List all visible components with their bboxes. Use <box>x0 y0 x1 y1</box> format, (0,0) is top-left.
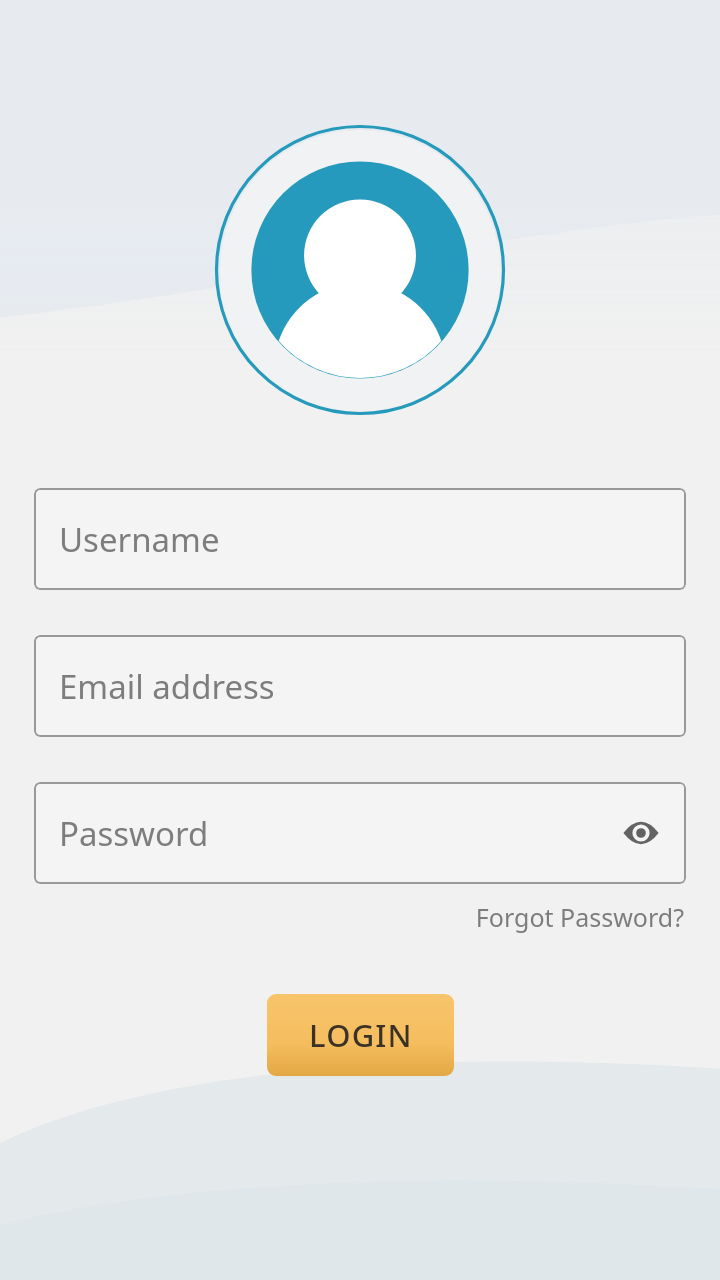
button[interactable]: Email address <box>34 635 686 737</box>
other: Profile avatar <box>214 124 506 416</box>
button[interactable]: Forgot Password? <box>473 896 686 938</box>
staticText: Forgot Password? <box>475 900 684 934</box>
button[interactable]: Password <box>34 782 686 884</box>
staticText: Email address <box>59 664 275 709</box>
staticText: LOGIN <box>309 1014 413 1056</box>
staticText: Password <box>59 811 209 856</box>
staticText: Username <box>59 517 220 562</box>
button[interactable]: Username <box>34 488 686 590</box>
button[interactable]: LOGIN <box>267 994 454 1076</box>
button[interactable]: Show password <box>618 810 664 856</box>
